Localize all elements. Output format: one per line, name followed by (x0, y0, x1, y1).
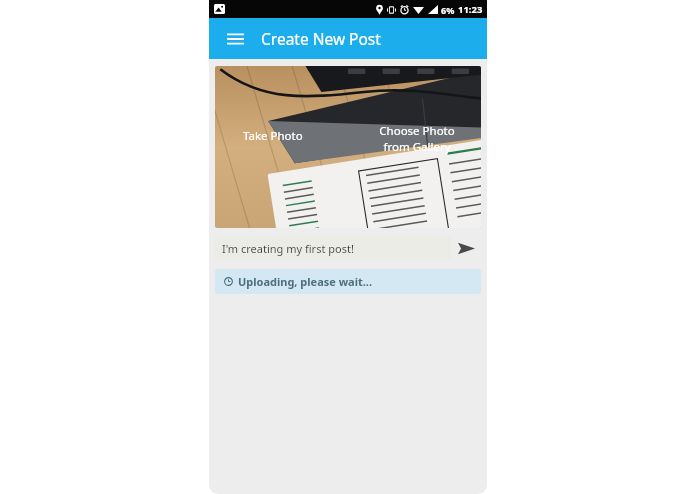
button[interactable]: Choose Photo from Gallery (365, 123, 469, 155)
staticText: 11:23 (458, 3, 483, 16)
staticText: Uploading, please wait... (238, 274, 373, 289)
button[interactable]: Send post (451, 235, 481, 261)
staticText: Choose Photo from Gallery (365, 123, 469, 155)
button[interactable]: Open navigation menu (223, 27, 247, 51)
button[interactable]: Uploading, please wait... (215, 269, 481, 294)
button[interactable]: I'm creating my first post! (222, 236, 451, 260)
staticText: I'm creating my first post! (222, 241, 354, 256)
button[interactable]: Take Photo (243, 128, 303, 144)
staticText: 6% (441, 4, 455, 16)
staticText: Take Photo (243, 128, 303, 144)
staticText: Create New Post (261, 28, 381, 49)
